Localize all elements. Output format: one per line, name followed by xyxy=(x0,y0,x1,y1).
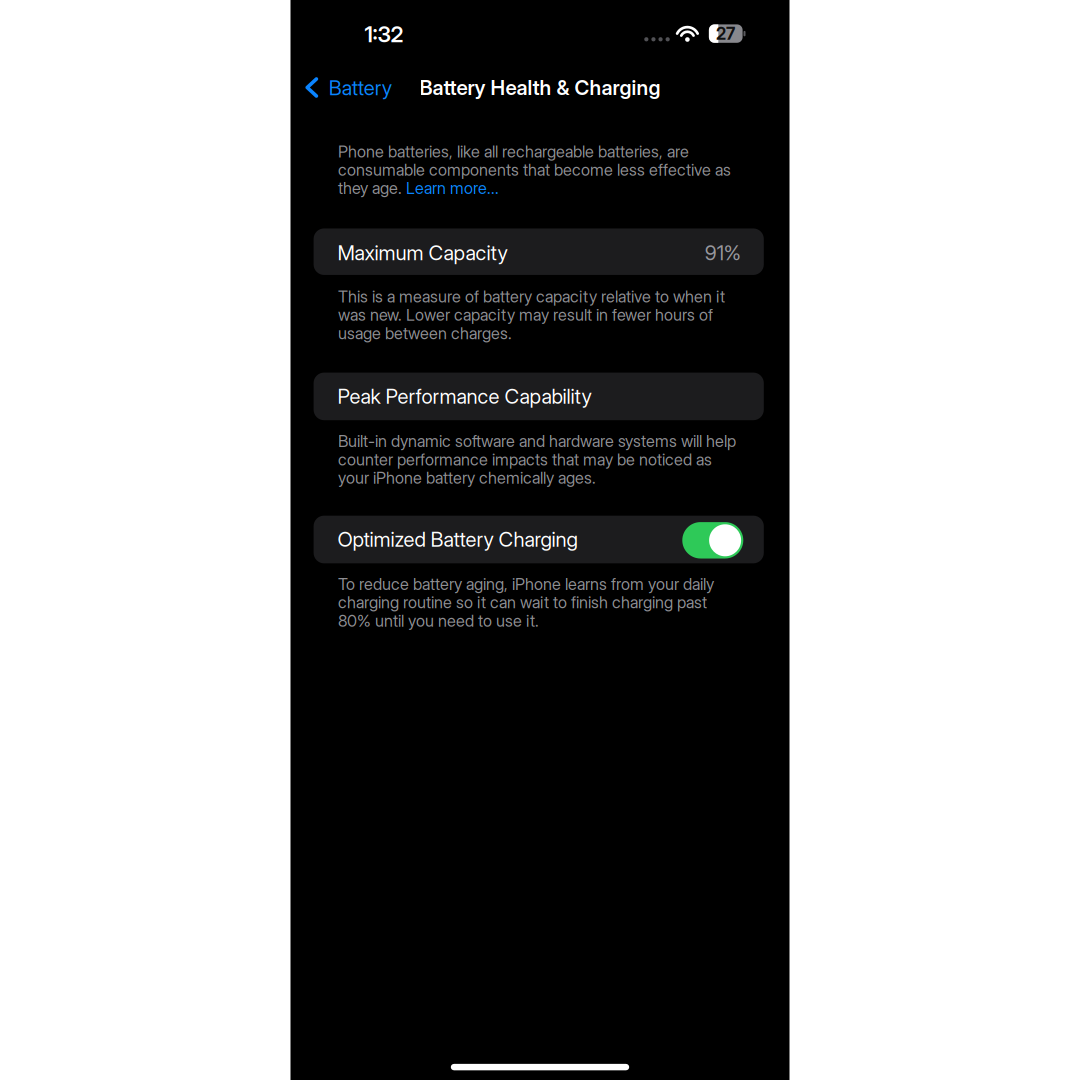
staticText: 91% xyxy=(705,241,741,265)
button[interactable]: Learn more... xyxy=(406,179,499,197)
staticText: they age. xyxy=(338,179,406,197)
staticText: Learn more... xyxy=(406,179,499,197)
staticText: 1:32 xyxy=(365,21,404,47)
staticText: 80% until you need to use it. xyxy=(338,612,539,630)
staticText: charging routine so it can wait to finis… xyxy=(338,593,707,611)
staticText: your iPhone battery chemically ages. xyxy=(338,469,596,487)
staticText: To reduce battery aging, iPhone learns f… xyxy=(338,575,714,593)
staticText: Peak Performance Capability xyxy=(338,384,592,409)
staticText: Optimized Battery Charging xyxy=(338,527,578,552)
staticText: Battery xyxy=(329,75,392,100)
staticText: was new. Lower capacity may result in fe… xyxy=(338,306,713,324)
staticText: Battery Health & Charging xyxy=(419,75,660,100)
staticText: consumable components that become less e… xyxy=(338,161,731,179)
staticText: counter performance impacts that may be … xyxy=(338,450,712,469)
staticText: Maximum Capacity xyxy=(338,241,508,265)
button[interactable]: Optimized Battery Charging xyxy=(682,522,743,558)
staticText: usage between charges. xyxy=(338,324,512,342)
staticText: 27 xyxy=(716,23,735,44)
staticText: Phone batteries, like all rechargeable b… xyxy=(338,142,689,161)
staticText: This is a measure of battery capacity re… xyxy=(338,287,725,306)
button[interactable]: Peak Performance Capability xyxy=(314,373,764,420)
button[interactable]: Back xyxy=(290,0,789,1080)
staticText: Built-in dynamic software and hardware s… xyxy=(338,432,736,450)
